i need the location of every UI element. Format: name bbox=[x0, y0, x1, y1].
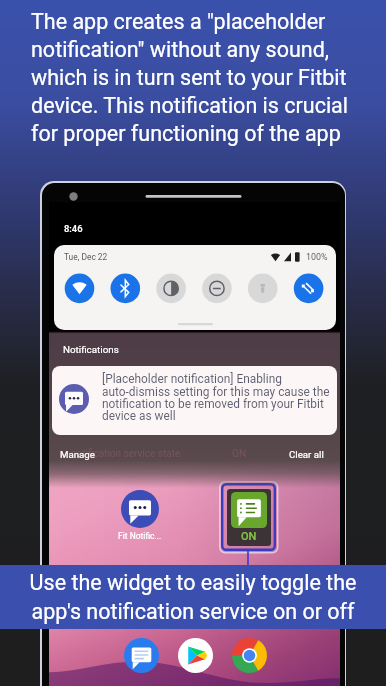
button[interactable]: Clear all bbox=[289, 449, 324, 460]
staticText: Notifications bbox=[63, 344, 119, 355]
staticText: Manage bbox=[60, 449, 95, 460]
staticText: notification service state bbox=[71, 448, 181, 460]
button[interactable]: Messages bbox=[124, 638, 159, 673]
button[interactable]: ON bbox=[221, 483, 276, 551]
staticText: ON bbox=[241, 530, 257, 543]
staticText: Clear all bbox=[289, 449, 324, 460]
staticText: ON bbox=[232, 448, 247, 460]
staticText: Use the widget to easily toggle the app'… bbox=[12, 570, 374, 624]
staticText: [Placeholder notification] Enabling auto… bbox=[102, 372, 336, 423]
staticText: 8:46 bbox=[64, 223, 83, 234]
button[interactable]: [Placeholder notification] Enabling auto… bbox=[52, 366, 337, 435]
button[interactable]: Fit Notific... bbox=[113, 490, 167, 538]
staticText: Tue, Dec 22 bbox=[64, 252, 108, 262]
staticText: 100% bbox=[306, 252, 328, 262]
button[interactable]: Chrome bbox=[232, 638, 267, 673]
staticText: Fit Notific... bbox=[118, 531, 162, 541]
staticText: The app creates a "placeholder notificat… bbox=[31, 9, 356, 147]
button[interactable]: Play Store bbox=[178, 638, 213, 673]
button[interactable]: Manage bbox=[60, 449, 95, 460]
